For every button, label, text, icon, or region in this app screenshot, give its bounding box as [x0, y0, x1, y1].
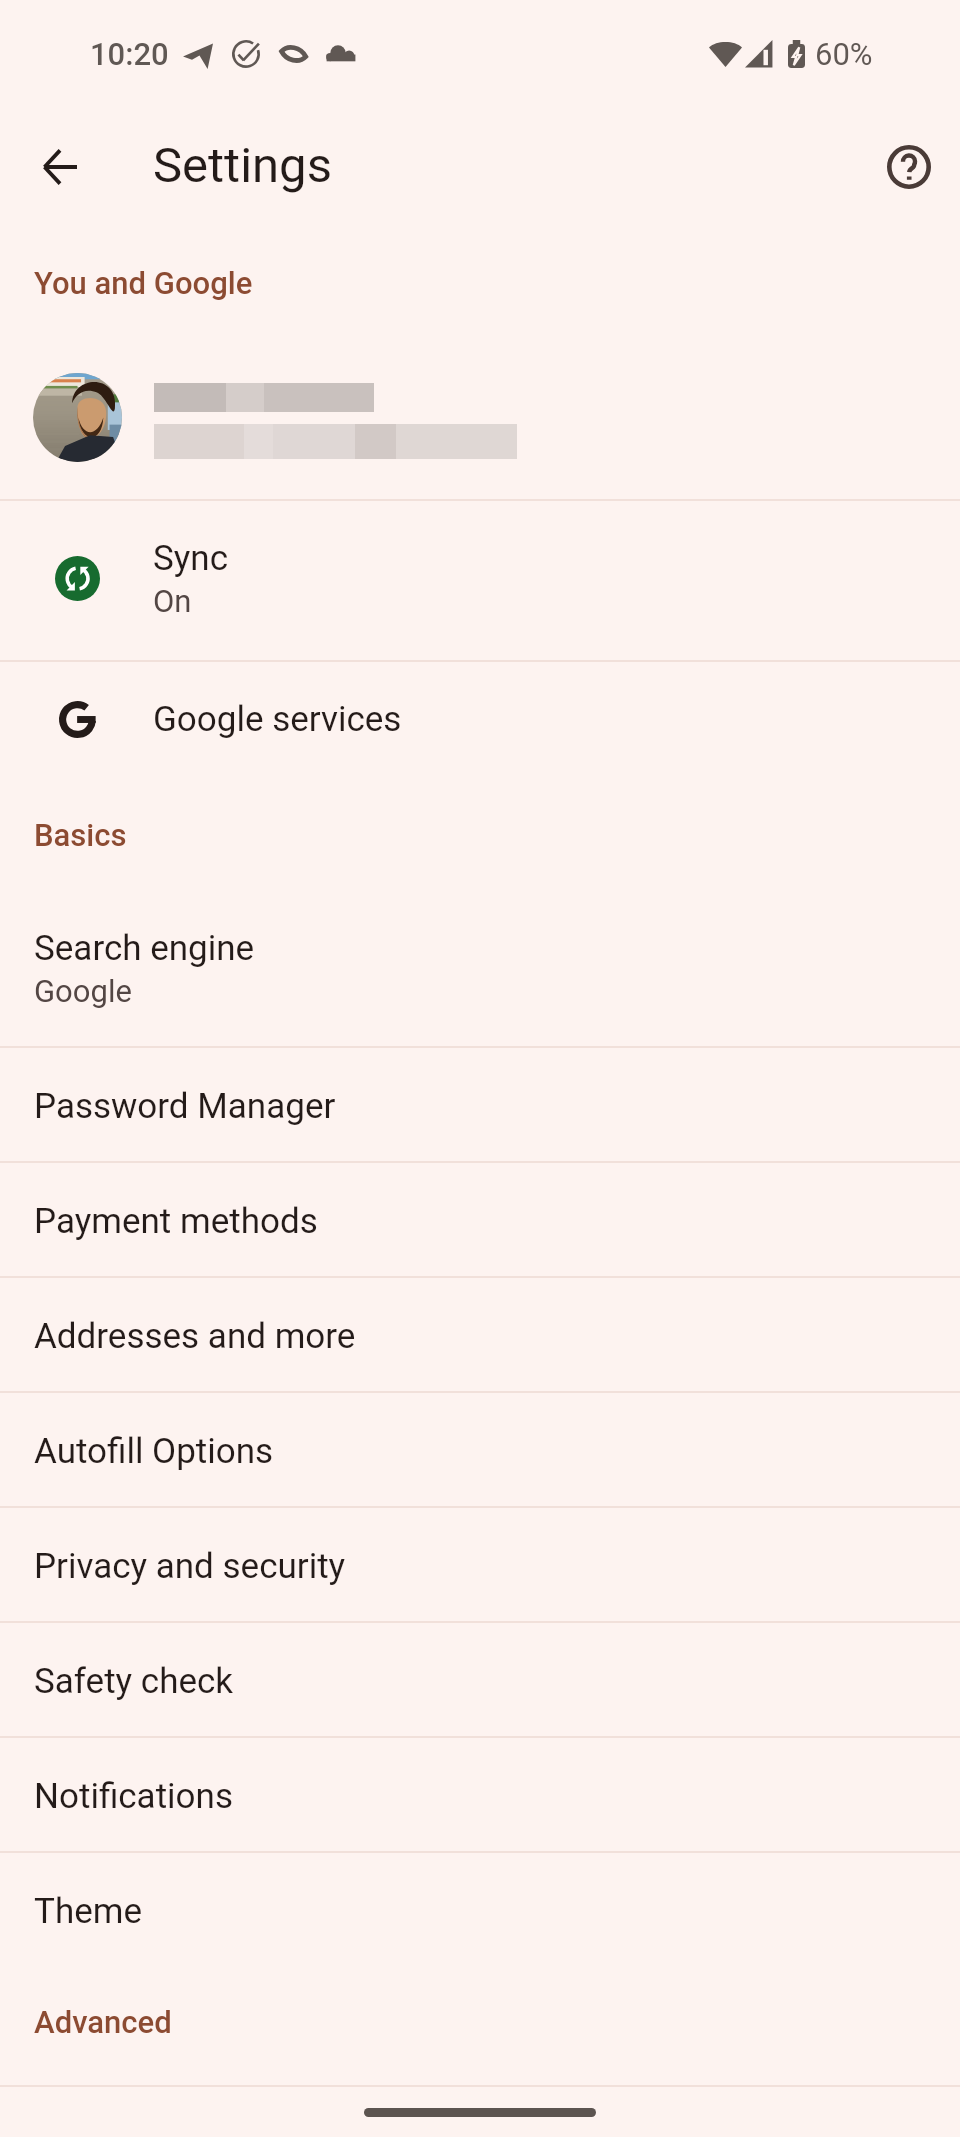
staticText: Privacy and security [34, 1546, 346, 1587]
staticText: Sync [153, 538, 228, 579]
button[interactable]: Help [875, 133, 943, 201]
button[interactable]: Addresses and more [0, 1278, 960, 1391]
button[interactable]: Back [26, 133, 94, 201]
button[interactable]: Autofill Options [0, 1393, 960, 1506]
staticText: Theme [34, 1891, 142, 1932]
button[interactable]: Safety check [0, 1623, 960, 1736]
staticText: Google services [153, 699, 402, 740]
staticText: Advanced [34, 2004, 172, 2040]
staticText: Settings [153, 137, 332, 194]
staticText: On [153, 583, 192, 619]
staticText: 10:20 [90, 36, 169, 72]
button[interactable]: Payment methods [0, 1163, 960, 1276]
staticText: Basics [34, 817, 127, 853]
staticText: Safety check [34, 1661, 234, 1702]
button[interactable]: Google services [0, 662, 960, 782]
button[interactable]: Search engine [0, 892, 960, 1046]
button[interactable]: Theme [0, 1853, 960, 1966]
button[interactable]: Privacy and security [0, 1508, 960, 1621]
staticText: Payment methods [34, 1201, 318, 1242]
button[interactable]: Sync [0, 501, 960, 660]
staticText: Google [34, 973, 132, 1009]
button[interactable]: Password Manager [0, 1048, 960, 1161]
staticText: Addresses and more [34, 1316, 356, 1357]
staticText: You and Google [34, 265, 253, 301]
staticText: Password Manager [34, 1086, 336, 1127]
staticText: Autofill Options [34, 1431, 274, 1472]
button[interactable] [0, 330, 960, 499]
button[interactable]: Notifications [0, 1738, 960, 1851]
staticText: Notifications [34, 1776, 233, 1817]
staticText: Search engine [34, 928, 255, 969]
staticText: 60% [815, 36, 873, 72]
